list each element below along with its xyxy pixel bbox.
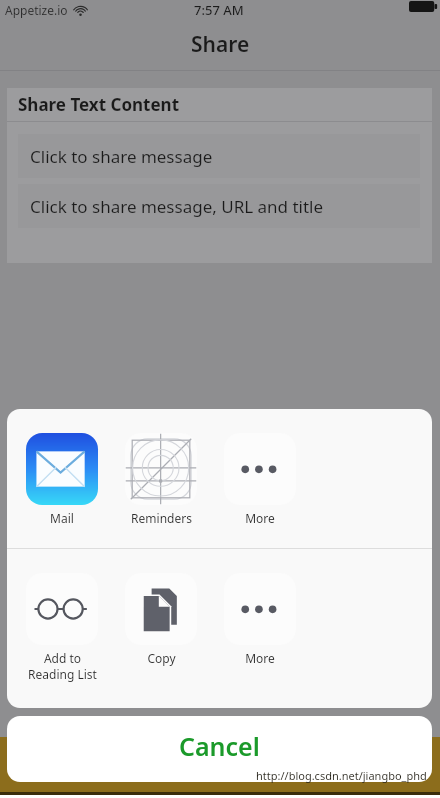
staticText: Share Text Content [18, 93, 180, 116]
staticText: Share [191, 30, 250, 59]
staticText: Click to share message [30, 145, 213, 168]
button[interactable]: Reminders [111, 433, 211, 526]
button[interactable]: Add to Reading List [12, 573, 112, 682]
staticText: http://blog.csdn.net/jiangbo_phd [256, 768, 427, 783]
staticText: Cancel [179, 729, 260, 763]
staticText: 7:57 AM [194, 1, 244, 19]
button[interactable]: More [210, 573, 310, 666]
staticText: Add to Reading List [28, 650, 97, 682]
staticText: Copy [147, 650, 176, 666]
staticText: Reminders [131, 510, 192, 526]
button[interactable]: Click to share message [18, 134, 420, 178]
staticText: Appetize.io [5, 2, 68, 18]
button[interactable]: Copy [111, 573, 211, 666]
staticText: Click to share message, URL and title [30, 195, 324, 218]
button[interactable]: Cancel [7, 716, 432, 782]
button[interactable]: Mail [12, 433, 112, 526]
button[interactable]: Click to share message, URL and title [18, 184, 420, 228]
staticText: Mail [50, 510, 74, 526]
staticText: More [245, 510, 275, 526]
staticText: More [245, 650, 275, 666]
button[interactable]: More [210, 433, 310, 526]
